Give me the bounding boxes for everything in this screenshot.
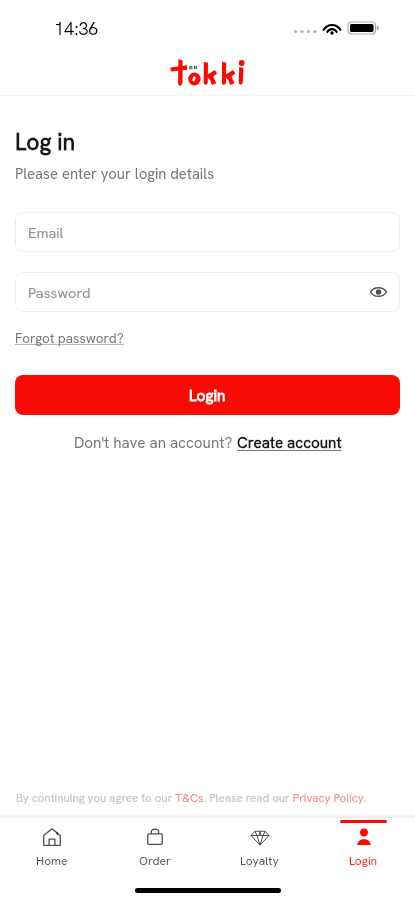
button[interactable]: Password <box>15 272 400 312</box>
staticText: Login <box>189 385 226 405</box>
staticText: Loyalty <box>240 853 279 869</box>
staticText: Email <box>28 223 64 242</box>
staticText: Password <box>28 283 91 302</box>
button[interactable]: Login <box>311 818 415 883</box>
button[interactable]: Loyalty <box>207 818 311 883</box>
button[interactable]: Order <box>103 818 207 883</box>
button[interactable]: Show password <box>366 280 390 304</box>
staticText: Don't have an account? <box>74 433 237 453</box>
staticText: Please enter your login details <box>15 164 215 183</box>
button[interactable]: Email <box>15 212 400 252</box>
staticText: Order <box>139 853 171 869</box>
staticText: 14:36 <box>54 17 99 40</box>
staticText: Login <box>349 853 378 869</box>
button[interactable]: Create account <box>237 433 342 453</box>
staticText: Log in <box>15 127 76 157</box>
button[interactable]: Home <box>0 818 103 883</box>
staticText: By continuing you agree to our T&Cs. Ple… <box>16 790 367 805</box>
staticText: Home <box>36 853 68 869</box>
button[interactable]: Forgot password? <box>15 329 124 347</box>
button[interactable]: Login <box>15 375 400 415</box>
